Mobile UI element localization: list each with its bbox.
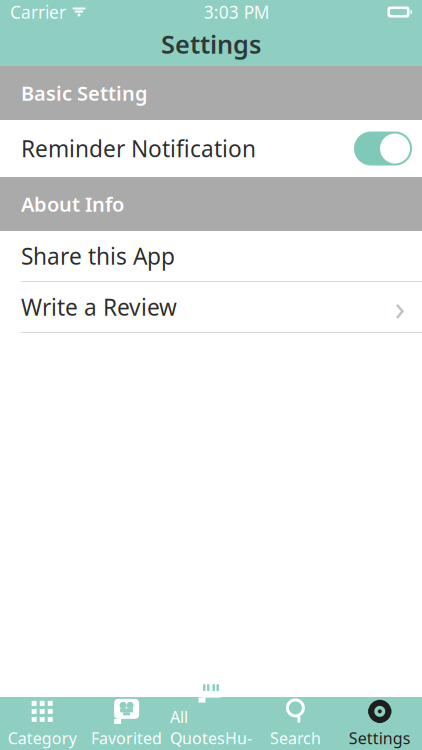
staticText: Write a Review [21, 292, 177, 322]
button[interactable]: All QuotesHub [169, 697, 253, 750]
button[interactable]: Favorited [84, 697, 169, 750]
staticText: Reminder Notification [21, 133, 256, 163]
staticText: › [394, 284, 405, 330]
button[interactable]: Write a Review [0, 282, 422, 333]
button[interactable]: Search [253, 697, 338, 750]
button[interactable]: Reminder Notification [0, 120, 422, 177]
staticText: Share this App [21, 241, 175, 271]
staticText: All QuotesHub [170, 706, 252, 750]
staticText: Basic Setting [21, 80, 148, 106]
staticText: Carrier [10, 0, 66, 23]
staticText: 3:03 PM [204, 0, 270, 23]
staticText: Category [8, 727, 77, 749]
staticText: Search [270, 727, 321, 749]
button[interactable]: Category [0, 697, 84, 750]
staticText: Favorited [91, 727, 162, 749]
button[interactable]: Settings [338, 697, 422, 750]
staticText: About Info [21, 191, 124, 217]
staticText: Settings [161, 27, 261, 61]
button[interactable]: Share this App [0, 231, 422, 282]
staticText: Settings [349, 727, 411, 749]
